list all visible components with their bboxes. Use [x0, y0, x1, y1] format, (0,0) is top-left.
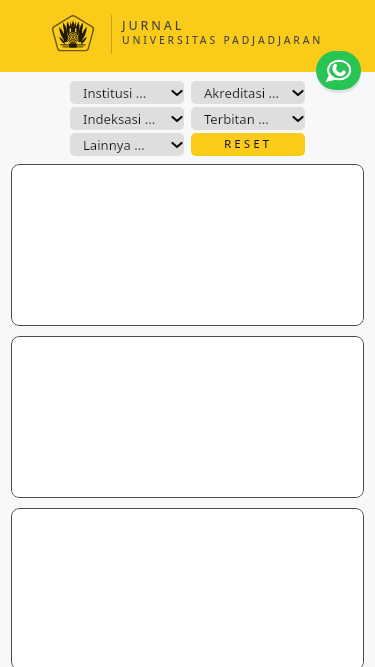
staticText: UNIVERSITAS PADJADJARAN: [122, 33, 324, 47]
button[interactable]: [11, 508, 364, 667]
staticText: Indeksasi ...: [83, 110, 156, 128]
button[interactable]: Akreditasi ...: [191, 81, 305, 104]
staticText: Akreditasi ...: [204, 84, 279, 102]
button[interactable]: [11, 336, 364, 498]
staticText: JURNAL: [122, 17, 185, 34]
button[interactable]: Institusi ...: [70, 81, 184, 104]
staticText: Lainnya ...: [83, 136, 145, 154]
button[interactable]: Chat on WhatsApp: [316, 51, 361, 90]
button[interactable]: [11, 164, 364, 326]
staticText: Institusi ...: [83, 84, 147, 102]
button[interactable]: Terbitan ...: [191, 107, 305, 130]
staticText: RESET: [224, 136, 273, 152]
button[interactable]: Indeksasi ...: [70, 107, 184, 130]
button[interactable]: RESET: [191, 133, 305, 156]
button[interactable]: Lainnya ...: [70, 133, 184, 156]
staticText: Terbitan ...: [204, 110, 269, 128]
